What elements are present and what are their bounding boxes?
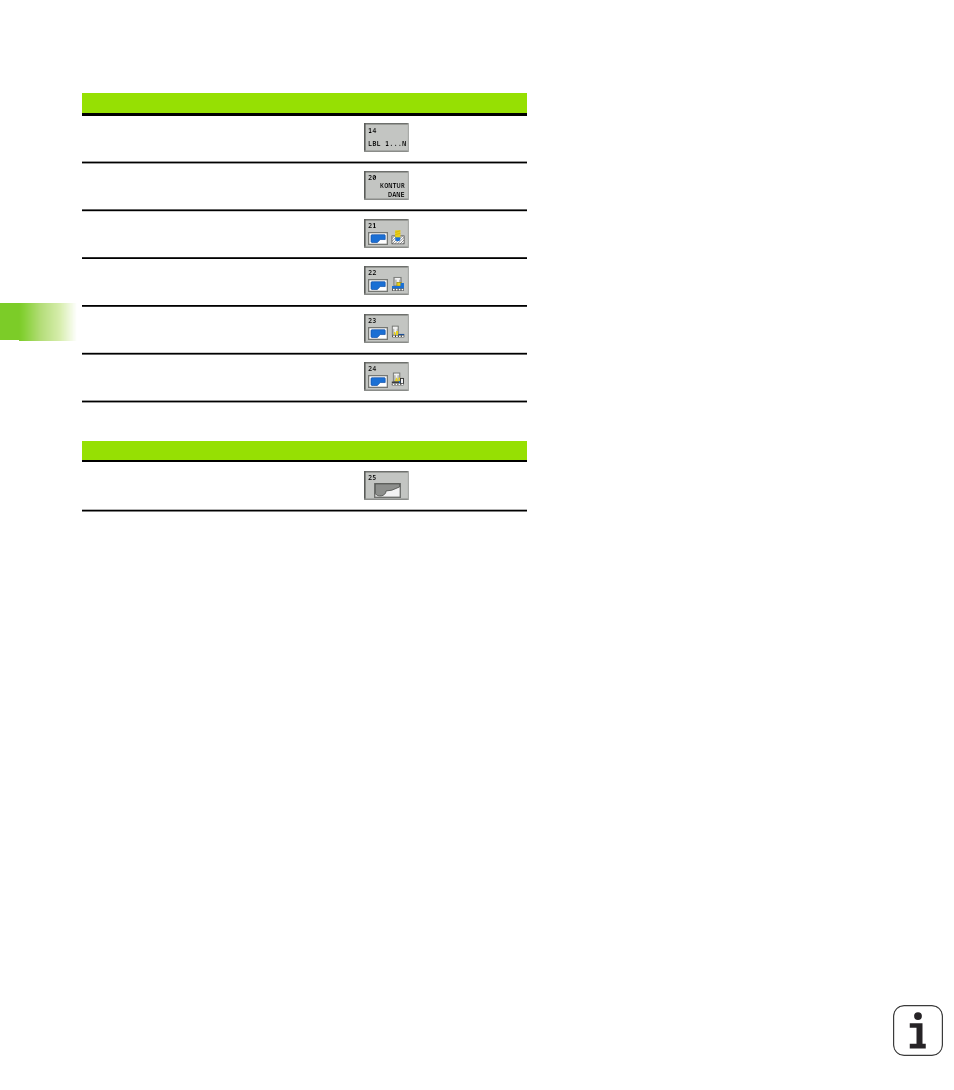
- staticText: 22: [368, 268, 377, 277]
- staticText: 20: [368, 173, 377, 182]
- button[interactable]: Soft key 20 KONTUR DANE: [364, 171, 409, 200]
- button[interactable]: Soft key 14 LBL 1...N: [364, 123, 409, 152]
- staticText: KONTUR: [380, 181, 405, 190]
- button[interactable]: Cycle 22 pocket roughing: [82, 258, 527, 306]
- button[interactable]: Cycle 24 side finishing: [82, 354, 527, 402]
- staticText: 24: [368, 364, 377, 373]
- button[interactable]: Soft key 22 roughing: [364, 266, 409, 295]
- staticText: 23: [368, 316, 377, 325]
- staticText: DANE: [388, 190, 405, 199]
- button[interactable]: Cycle 25 contour train: [82, 462, 527, 510]
- button[interactable]: Cycle 23 floor finishing: [82, 306, 527, 354]
- button[interactable]: Cycle 20 KONTUR DANE: [82, 163, 527, 211]
- button[interactable]: Cycle 14 LBL 1...N: [82, 115, 527, 163]
- staticText: 14: [368, 125, 377, 135]
- staticText: 25: [368, 473, 377, 482]
- button[interactable]: Soft key 23 floor finishing: [364, 314, 409, 343]
- staticText: LBL 1...N: [368, 138, 407, 148]
- button[interactable]: Cycle 25 contour train soft key: [364, 471, 409, 500]
- button[interactable]: Soft key 21 pilot drilling: [364, 219, 409, 248]
- button[interactable]: Cycle 21 pocket pilot drilling: [82, 211, 527, 259]
- button[interactable]: Information: [893, 1005, 943, 1056]
- staticText: 21: [368, 221, 377, 230]
- button[interactable]: Soft key 24 side finishing: [364, 362, 409, 391]
